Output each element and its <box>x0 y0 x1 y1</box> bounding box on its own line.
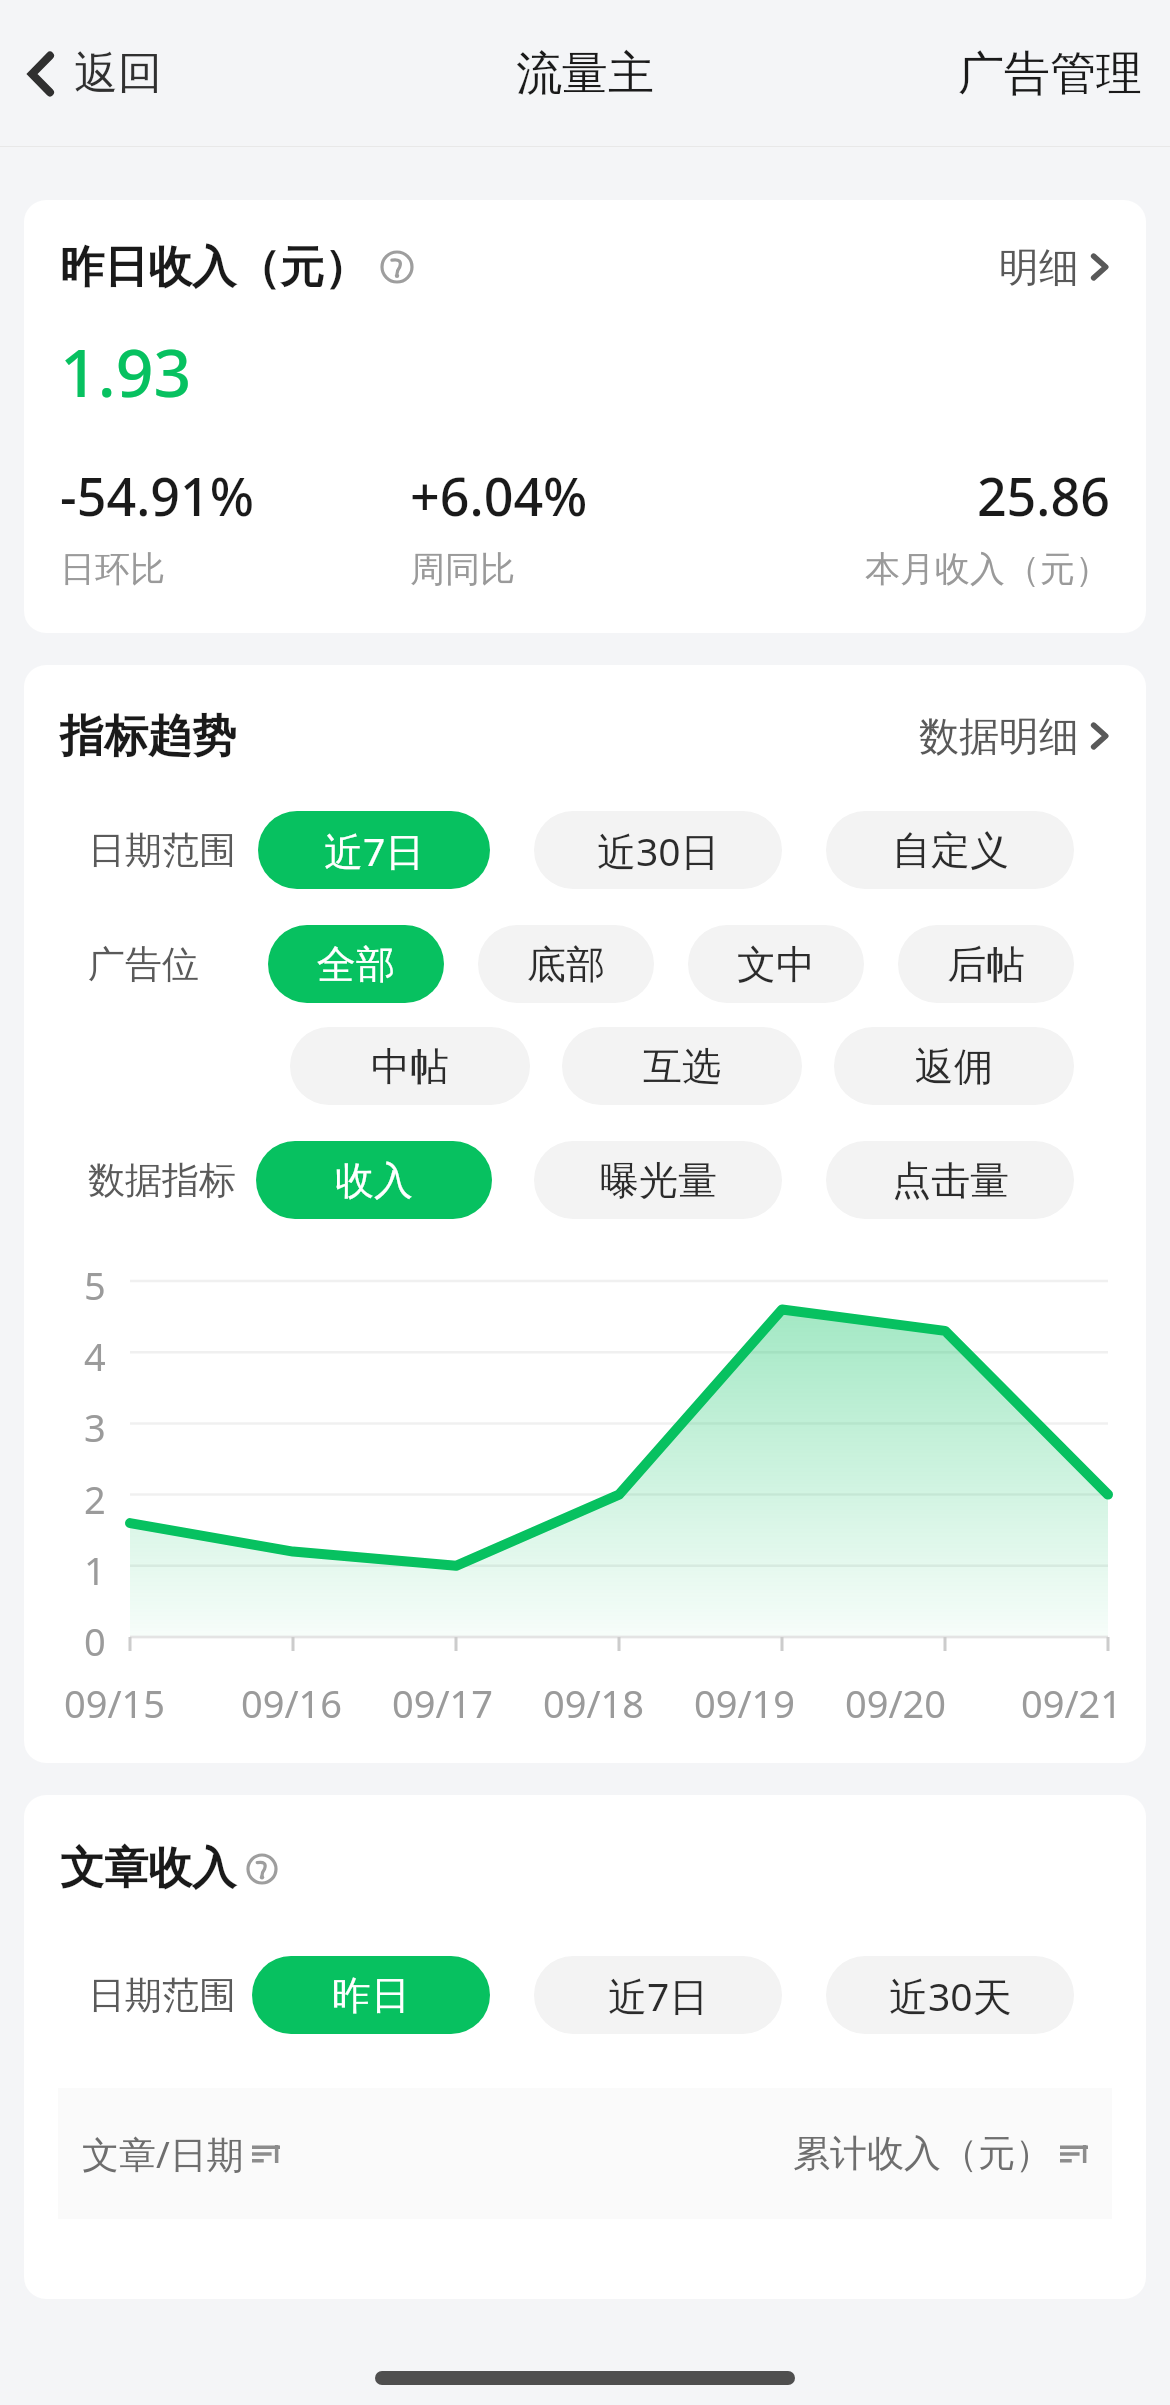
button[interactable]: 点击量 <box>826 1141 1074 1219</box>
staticText: 返回 <box>74 46 162 101</box>
staticText: 数据指标 <box>88 1157 236 1204</box>
staticText: 日环比 <box>60 547 410 591</box>
staticText: 0 <box>84 1615 106 1659</box>
button[interactable]: 中帖 <box>290 1027 530 1105</box>
staticText: 文中 <box>737 940 815 989</box>
staticText: 1 <box>84 1544 106 1588</box>
button[interactable]: 收入 <box>256 1141 492 1219</box>
staticText: 近7日 <box>324 824 425 877</box>
staticText: 文章收入 <box>60 1841 236 1896</box>
staticText: 互选 <box>643 1042 721 1091</box>
staticText: 指标趋势 <box>60 709 236 764</box>
button[interactable]: 底部 <box>478 925 654 1003</box>
staticText: 全部 <box>317 940 395 989</box>
staticText: 自定义 <box>892 826 1009 875</box>
button[interactable]: 返佣 <box>834 1027 1074 1105</box>
staticText: 曝光量 <box>600 1156 717 1205</box>
other: 排序 <box>252 2140 280 2168</box>
staticText: 收入 <box>335 1156 413 1205</box>
staticText: 返佣 <box>915 1042 993 1091</box>
staticText: 近7日 <box>608 1969 709 2022</box>
staticText: 点击量 <box>892 1156 1009 1205</box>
button[interactable]: 近30日 <box>534 811 782 889</box>
staticText: 25.86 <box>760 460 1110 531</box>
button[interactable]: 累计收入（元） <box>793 2130 1088 2177</box>
staticText: 日期范围 <box>88 1972 236 2019</box>
button[interactable]: 全部 <box>268 925 444 1003</box>
staticText: 昨日 <box>332 1971 410 2020</box>
staticText: 09/16 <box>216 1677 367 1729</box>
button[interactable]: 昨日 <box>252 1956 490 2034</box>
staticText: 底部 <box>527 940 605 989</box>
button[interactable]: 返回 <box>14 36 174 111</box>
staticText: 本月收入（元） <box>760 547 1110 591</box>
staticText: 累计收入（元） <box>793 2130 1052 2177</box>
button[interactable]: 明细 <box>991 234 1118 300</box>
staticText: 09/17 <box>367 1677 518 1729</box>
staticText: 数据明细 <box>919 711 1079 761</box>
staticText: 后帖 <box>947 940 1025 989</box>
button[interactable]: 近7日 <box>258 811 490 889</box>
staticText: 明细 <box>999 242 1079 292</box>
staticText: 09/18 <box>518 1677 669 1729</box>
staticText: 09/19 <box>669 1677 820 1729</box>
staticText: 昨日收入（元） <box>60 240 368 295</box>
staticText: 中帖 <box>371 1042 449 1091</box>
staticText: 广告管理 <box>958 45 1142 103</box>
button[interactable]: 文章收入说明 <box>240 1847 284 1891</box>
staticText: 广告位 <box>88 941 199 988</box>
staticText: -54.91% <box>60 460 410 531</box>
staticText: 1.93 <box>60 326 192 416</box>
staticText: 近30天 <box>889 1969 1012 2022</box>
button[interactable]: 数据明细 <box>911 703 1118 769</box>
staticText: 文章/日期 <box>82 2128 244 2179</box>
button[interactable]: 收入说明 <box>374 244 420 290</box>
staticText: 09/15 <box>64 1677 216 1729</box>
button[interactable]: 文章/日期 <box>82 2128 280 2179</box>
button[interactable]: 互选 <box>562 1027 802 1105</box>
button[interactable]: 文中 <box>688 925 864 1003</box>
staticText: 09/21 <box>971 1677 1122 1729</box>
staticText: 日期范围 <box>88 827 236 874</box>
staticText: 流量主 <box>516 45 654 103</box>
staticText: 近30日 <box>597 824 720 877</box>
button[interactable]: 曝光量 <box>534 1141 782 1219</box>
staticText: +6.04% <box>410 460 760 531</box>
button[interactable]: 广告管理 <box>946 35 1154 113</box>
button[interactable]: 近30天 <box>826 1956 1074 2034</box>
staticText: 周同比 <box>410 547 760 591</box>
staticText: 3 <box>84 1401 106 1445</box>
button[interactable]: 后帖 <box>898 925 1074 1003</box>
staticText: 2 <box>84 1473 106 1517</box>
button[interactable]: 近7日 <box>534 1956 782 2034</box>
staticText: 5 <box>84 1259 106 1303</box>
staticText: 09/20 <box>820 1677 971 1729</box>
button[interactable]: 自定义 <box>826 811 1074 889</box>
other: 排序 <box>1060 2140 1088 2168</box>
staticText: 4 <box>84 1330 106 1374</box>
